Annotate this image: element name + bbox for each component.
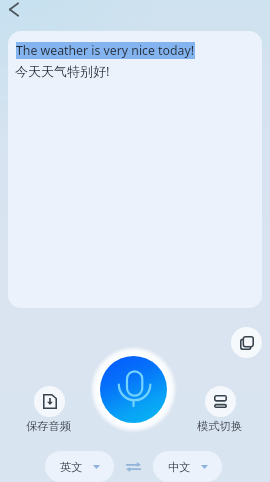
staticText: 英文 bbox=[60, 460, 83, 474]
staticText: 中文 bbox=[168, 460, 191, 474]
staticText: The weather is very nice today! bbox=[16, 42, 195, 59]
button[interactable]: Mode switch bbox=[190, 386, 250, 433]
staticText: 保存音频 bbox=[26, 419, 72, 433]
button[interactable]: Save audio bbox=[19, 386, 79, 433]
staticText: 模式切换 bbox=[197, 419, 243, 433]
button[interactable]: 中文 bbox=[153, 451, 222, 482]
button[interactable]: Record bbox=[100, 356, 167, 423]
button[interactable]: Swap languages bbox=[114, 451, 153, 482]
button[interactable]: 英文 bbox=[45, 451, 114, 482]
staticText: 今天天气特别好! bbox=[15, 62, 110, 80]
button[interactable]: Copy bbox=[231, 327, 262, 358]
button[interactable]: Back bbox=[2, 0, 32, 30]
